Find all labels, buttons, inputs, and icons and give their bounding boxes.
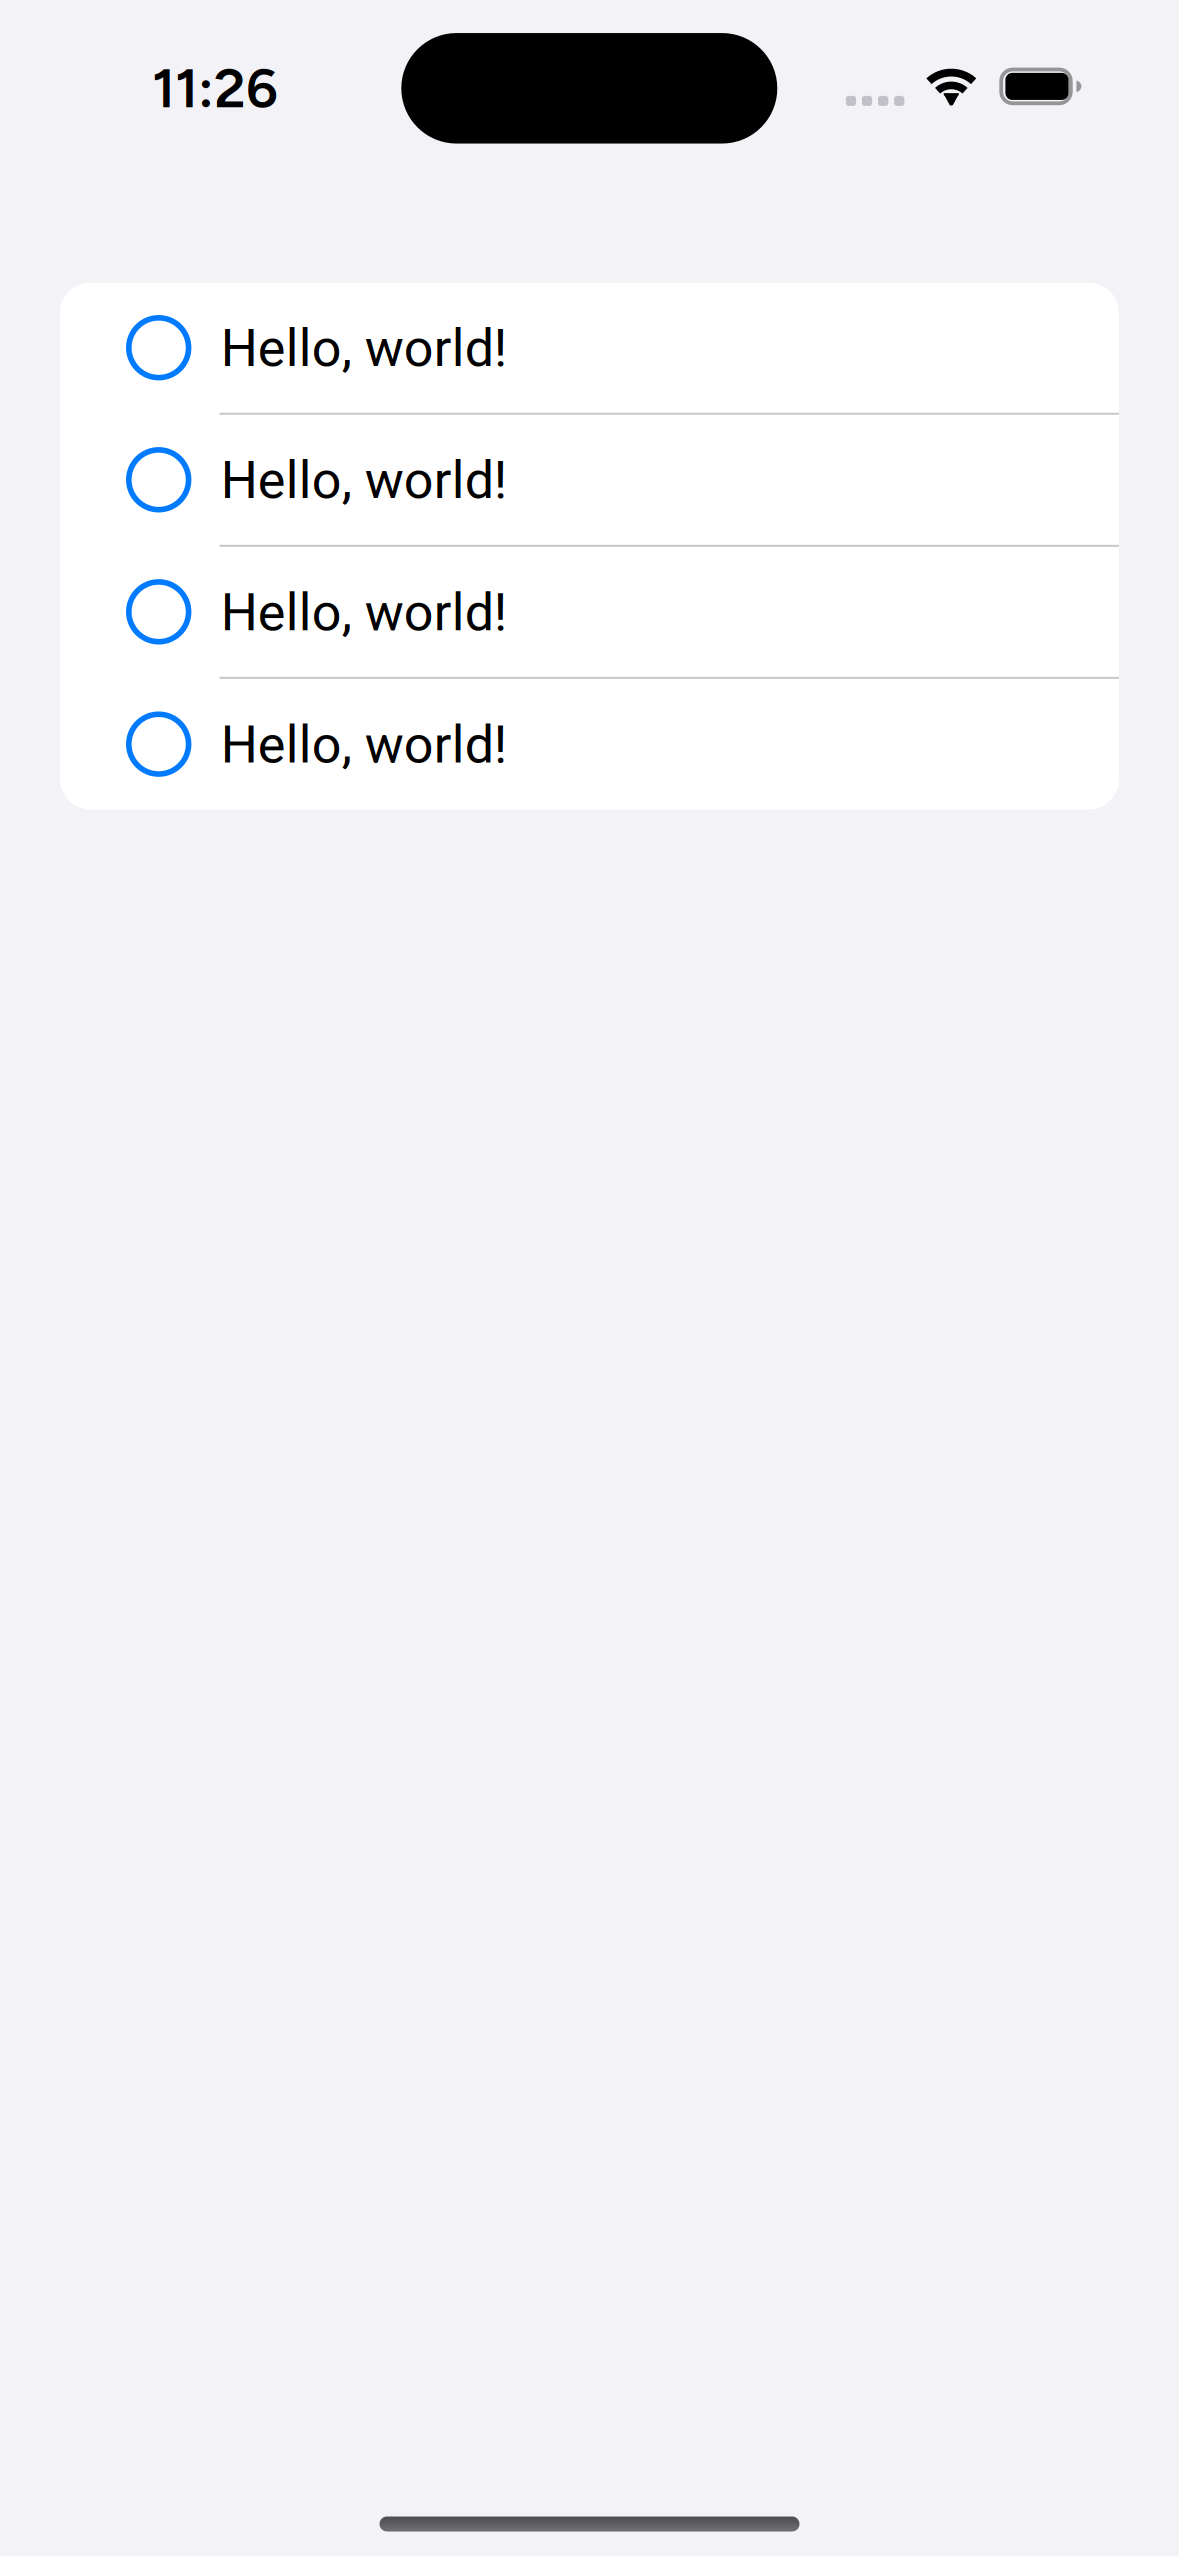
button[interactable]: Hello, world! <box>60 547 1119 679</box>
button[interactable]: Hello, world! <box>60 679 1119 809</box>
staticText: Hello, world! <box>221 708 507 784</box>
staticText: Hello, world! <box>221 311 507 388</box>
button[interactable]: Hello, world! <box>60 283 1119 415</box>
button[interactable]: Hello, world! <box>60 415 1119 547</box>
staticText: Hello, world! <box>221 576 507 652</box>
staticText: 11:26 <box>152 55 278 121</box>
staticText: Hello, world! <box>221 444 507 520</box>
